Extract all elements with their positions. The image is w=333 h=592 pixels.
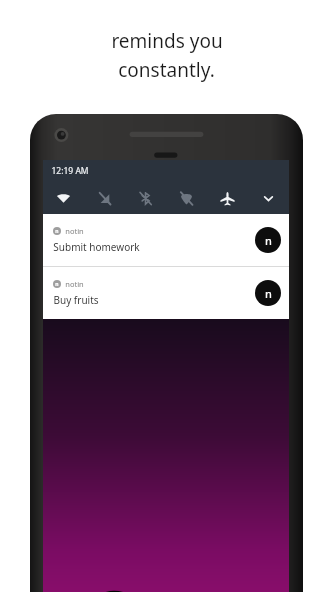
button[interactable]: Bluetooth off: [125, 182, 166, 214]
button[interactable]: Airplane mode: [207, 182, 248, 214]
staticText: n: [265, 286, 272, 301]
staticText: notin: [65, 226, 84, 236]
staticText: n: [265, 233, 272, 248]
staticText: 12:19 AM: [51, 165, 89, 177]
button[interactable]: Wi-Fi: [43, 182, 84, 214]
staticText: Submit homework: [53, 240, 140, 254]
button[interactable]: Mobile data off: [84, 182, 125, 214]
staticText: notin: [65, 279, 84, 289]
button[interactable]: n: [43, 214, 289, 266]
staticText: n: [55, 281, 59, 288]
button[interactable]: n: [43, 267, 289, 319]
staticText: n: [55, 228, 59, 235]
button[interactable]: Expand: [248, 182, 289, 214]
staticText: Buy fruits: [53, 293, 99, 307]
staticText: constantly.: [118, 57, 215, 83]
staticText: reminds you: [111, 28, 223, 54]
button[interactable]: Location off: [166, 182, 207, 214]
